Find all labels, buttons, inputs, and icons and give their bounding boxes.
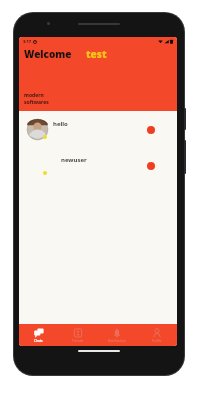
button[interactable]: Friends — [58, 324, 97, 346]
staticText: Chats — [34, 339, 43, 343]
staticText: test — [86, 47, 107, 61]
staticText: Welcome — [24, 47, 72, 61]
staticText: Friends — [72, 339, 84, 343]
staticText: modern — [24, 92, 44, 99]
button[interactable]: Notification — [97, 324, 137, 346]
staticText: 3:17 — [23, 39, 31, 44]
staticText: newuser — [61, 156, 87, 164]
staticText: Notification — [108, 339, 126, 343]
staticText: softwares — [24, 99, 49, 106]
button[interactable]: newuser — [19, 151, 177, 181]
staticText: Profile — [152, 339, 162, 343]
button[interactable]: Profile — [137, 324, 177, 346]
button[interactable]: hello — [19, 115, 177, 145]
button[interactable]: Chats — [19, 324, 58, 346]
staticText: hello — [53, 120, 68, 128]
